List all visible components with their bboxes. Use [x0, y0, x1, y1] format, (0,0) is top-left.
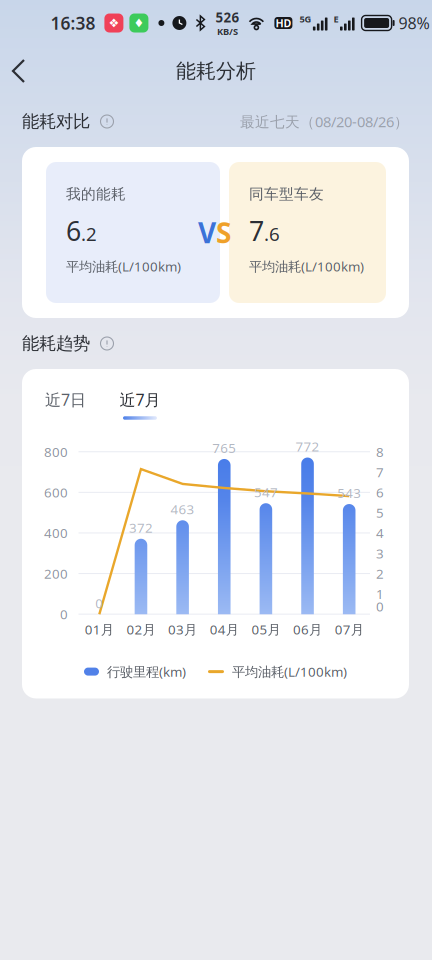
staticText: 同车型车友 [249, 185, 324, 203]
staticText: 6 [66, 213, 81, 248]
staticText: 3 [376, 544, 384, 562]
staticText: 03月 [168, 620, 197, 638]
button[interactable]: 近7日 [46, 389, 85, 420]
staticText: 5G [299, 13, 311, 25]
staticText: 近7日 [45, 389, 86, 410]
staticText: 01月 [85, 620, 114, 638]
staticText: ♦ [133, 16, 144, 30]
staticText: 98% [399, 12, 430, 34]
staticText: HD [275, 16, 291, 30]
staticText: 07月 [335, 620, 364, 638]
staticText: 6 [376, 483, 384, 501]
staticText: 463 [171, 500, 195, 518]
staticText: KB/S [217, 25, 238, 38]
staticText: 200 [44, 565, 68, 582]
staticText: 600 [44, 483, 68, 501]
staticText: 765 [212, 439, 236, 457]
staticText: 06月 [293, 620, 322, 638]
staticText: 5 [376, 504, 384, 521]
staticText: 0 [376, 598, 384, 615]
staticText: 526 [215, 8, 239, 26]
staticText: 02月 [126, 620, 155, 638]
staticText: 4 [376, 524, 384, 542]
staticText: 0 [95, 594, 103, 612]
staticText: 2 [376, 565, 384, 582]
staticText: 547 [254, 483, 278, 501]
staticText: 400 [44, 524, 68, 542]
staticText: 7 [249, 213, 264, 248]
staticText: 04月 [210, 620, 239, 638]
staticText: 近7月 [119, 389, 160, 410]
staticText: 05月 [251, 620, 280, 638]
staticText: 7 [376, 463, 384, 481]
button[interactable]: Info about 能耗对比 [98, 112, 116, 130]
staticText: 最近七天（08/20-08/26） [240, 112, 409, 131]
staticText: 543 [337, 484, 361, 502]
staticText: V [198, 214, 216, 251]
button[interactable]: 近7月 [120, 389, 160, 420]
staticText: 8 [376, 443, 384, 461]
staticText: 772 [295, 437, 319, 455]
staticText: 平均油耗(L/100km) [232, 663, 347, 680]
staticText: 平均油耗(L/100km) [66, 257, 181, 275]
staticText: 800 [44, 443, 68, 461]
staticText: 能耗趋势 [22, 333, 90, 354]
staticText: 平均油耗(L/100km) [249, 257, 364, 275]
staticText: 16:38 [50, 11, 95, 34]
staticText: S [216, 214, 231, 251]
staticText: 我的能耗 [66, 185, 126, 203]
staticText: .6 [264, 221, 280, 246]
button[interactable]: Back [0, 52, 46, 90]
staticText: 1 [376, 585, 384, 603]
staticText: 行驶里程(km) [107, 663, 186, 680]
button[interactable]: Info about 能耗趋势 [98, 334, 116, 352]
staticText: .2 [81, 221, 97, 246]
staticText: 0 [60, 605, 68, 623]
staticText: E [333, 13, 338, 25]
staticText: ❖ [108, 16, 119, 30]
staticText: 能耗分析 [176, 59, 256, 83]
staticText: 372 [129, 519, 153, 536]
staticText: 能耗对比 [22, 111, 90, 132]
